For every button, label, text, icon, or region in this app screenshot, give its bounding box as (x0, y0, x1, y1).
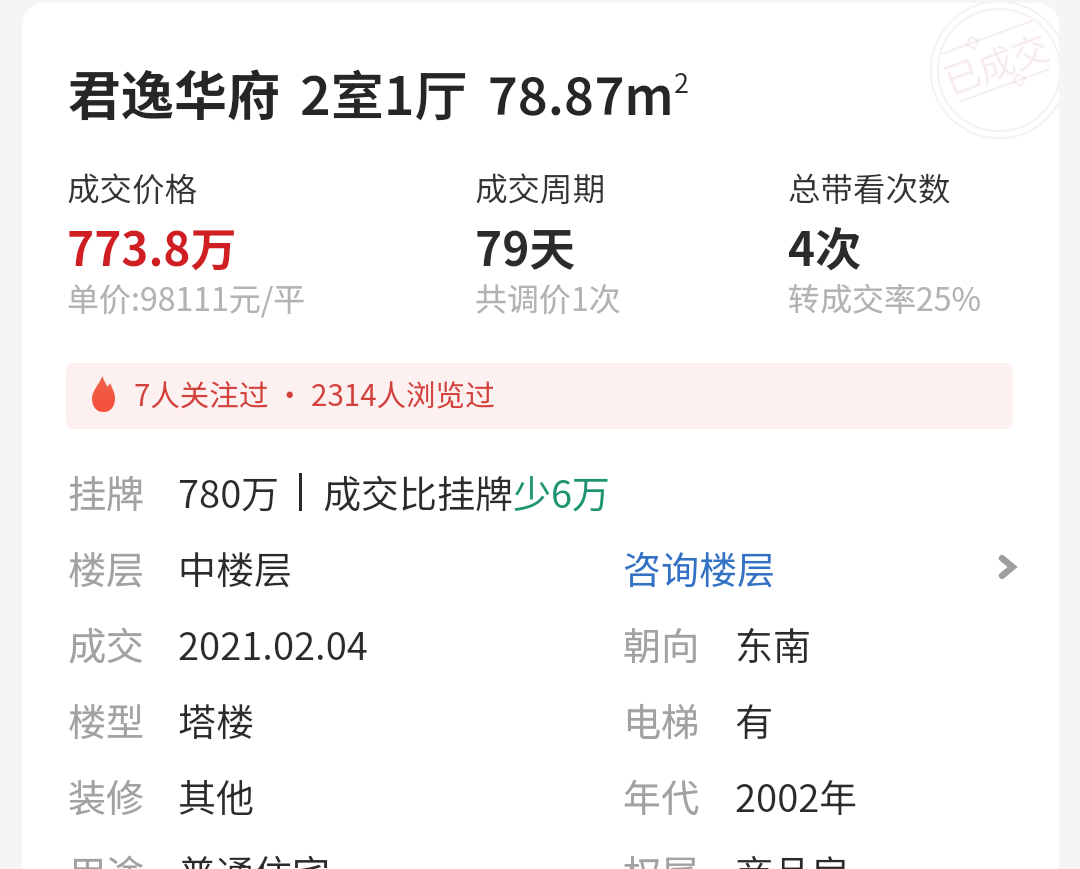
staticText: 成交价格 (67, 163, 198, 210)
staticText: 楼型 (68, 692, 145, 747)
staticText: 中楼层 (178, 540, 293, 595)
staticText: 单价:98111元/平 (67, 274, 306, 320)
staticText: 装修 (68, 768, 145, 823)
staticText: 2021.02.04 (178, 616, 368, 671)
staticText: 普通住宅 (178, 844, 331, 869)
staticText: 773.8万 (67, 213, 237, 280)
staticText: 商品房 (735, 844, 850, 869)
staticText: 成交 (68, 616, 145, 671)
staticText: 塔楼 (178, 692, 255, 747)
button[interactable]: 咨询楼层 (615, 536, 784, 598)
staticText: 780万 (178, 464, 280, 519)
staticText: 7人关注过 · 2314人浏览过 (134, 372, 495, 415)
other: 查看楼层详情 (999, 552, 1016, 582)
staticText: 79天 (475, 213, 576, 280)
staticText: 其他 (178, 768, 255, 823)
staticText: 总带看次数 (788, 163, 951, 210)
staticText: 共调价1次 (475, 274, 621, 320)
staticText: 挂牌 (68, 464, 145, 519)
staticText: 年代 (623, 768, 700, 823)
staticText: 4次 (788, 213, 862, 280)
staticText: 电梯 (623, 692, 700, 747)
button[interactable]: 7人关注过 · 2314人浏览过 (66, 363, 1013, 429)
staticText: 权属 (623, 844, 700, 869)
staticText: 2002年 (735, 768, 858, 823)
staticText: 成交周期 (475, 163, 606, 210)
staticText: 有 (735, 692, 774, 747)
staticText: 朝向 (623, 616, 700, 671)
staticText: 楼层 (68, 540, 145, 595)
staticText: 东南 (735, 616, 812, 671)
staticText: 君逸华府 2室1厅 78.87m2 (68, 54, 689, 131)
staticText: 转成交率25% (788, 274, 981, 320)
staticText: 用途 (68, 844, 145, 869)
button[interactable]: 楼层 (22, 529, 1059, 605)
staticText: 成交比挂牌少6万 (323, 464, 611, 519)
staticText: 咨询楼层 (623, 540, 776, 595)
